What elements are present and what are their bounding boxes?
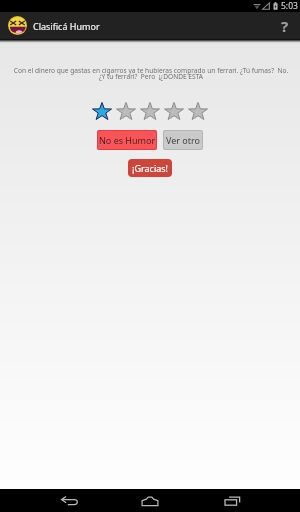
button[interactable]: Ver otro — [163, 130, 203, 150]
button[interactable]: Rate 5 stars — [186, 100, 210, 121]
staticText: No es Humor — [99, 134, 156, 146]
button[interactable]: Recent apps — [212, 489, 252, 512]
button[interactable]: Back — [49, 489, 89, 512]
button[interactable]: ¡Gracias! — [128, 159, 172, 177]
staticText: Ver otro — [166, 134, 201, 146]
button[interactable]: Rate 2 stars — [114, 100, 138, 121]
button[interactable]: Rate 4 stars — [162, 100, 186, 121]
staticText: ? — [281, 16, 289, 36]
button[interactable]: Home — [130, 489, 170, 512]
staticText: Clasificá Humor — [33, 20, 100, 32]
button[interactable]: Rate 1 stars — [90, 100, 114, 121]
button[interactable]: Help — [271, 12, 298, 39]
staticText: 5:03 — [281, 0, 298, 12]
staticText: ¡Gracias! — [132, 162, 168, 174]
staticText: Con el dinero que gastas en cigarros ya … — [9, 66, 293, 81]
button[interactable]: Rate 3 stars — [138, 100, 162, 121]
button[interactable]: No es Humor — [97, 130, 157, 150]
